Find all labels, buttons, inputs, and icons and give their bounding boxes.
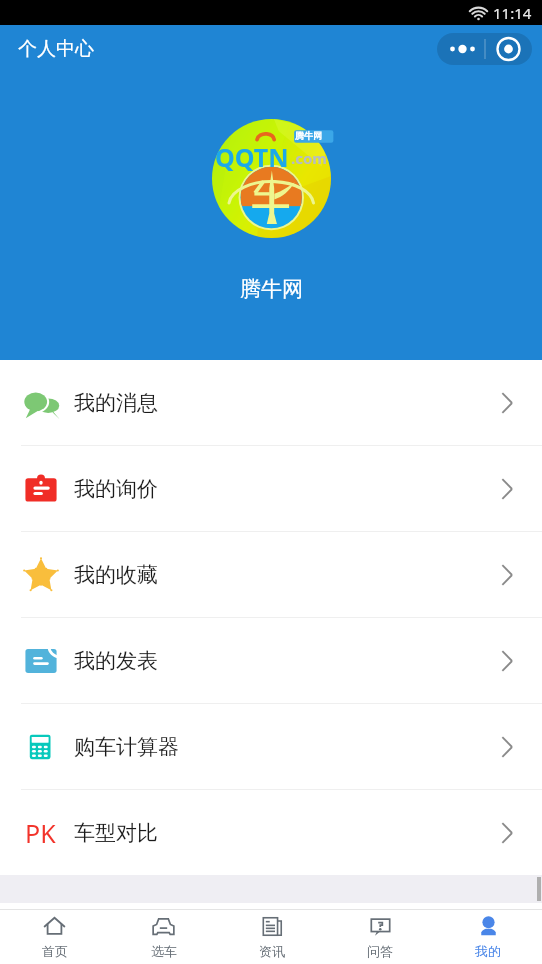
staticText: 个人中心 [18,37,94,61]
button[interactable]: 我的消息 [0,360,542,445]
staticText: 购车计算器 [74,734,179,760]
staticText: 腾牛网 [240,276,303,302]
button[interactable]: 资讯 [218,910,326,964]
button[interactable]: 我的收藏 [0,532,542,617]
staticText: PK [25,816,56,850]
button[interactable]: 我的询价 [0,446,542,531]
staticText: QQTN [215,140,289,174]
staticText: 车型对比 [74,820,158,846]
button[interactable]: 我的 [434,910,542,964]
staticText: 资讯 [259,943,285,959]
button[interactable]: 首页 [0,910,109,964]
staticText: 问答 [367,943,393,959]
button[interactable]: 选车 [109,910,218,964]
button[interactable]: 问答 [326,910,434,964]
button[interactable]: 购车计算器 [0,704,542,789]
staticText: 我的收藏 [74,562,158,588]
staticText: 我的询价 [74,476,158,502]
staticText: 首页 [42,943,68,959]
staticText: 我的 [475,943,501,959]
button[interactable]: More options [437,33,532,65]
staticText: 我的发表 [74,648,158,674]
button[interactable]: PK [0,790,542,875]
staticText: 腾牛网 [295,130,322,141]
staticText: 我的消息 [74,390,158,416]
staticText: 11:14 [493,3,532,23]
staticText: .com [291,148,327,168]
button[interactable]: 我的发表 [0,618,542,703]
staticText: 选车 [151,943,177,959]
